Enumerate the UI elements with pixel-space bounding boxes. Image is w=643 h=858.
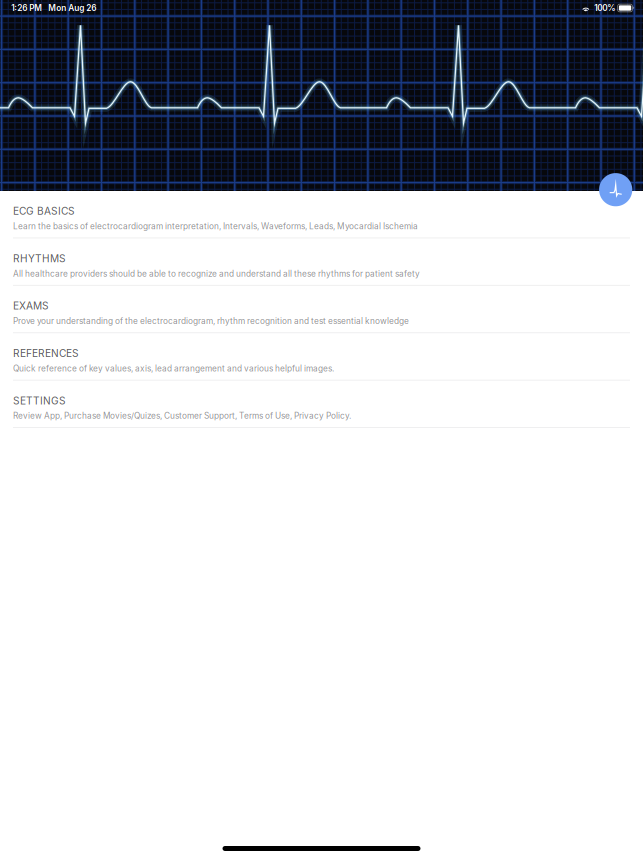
staticText: REFERENCES bbox=[13, 347, 79, 359]
button[interactable]: SETTINGS bbox=[0, 381, 643, 428]
staticText: Mon Aug 26 bbox=[48, 3, 96, 13]
staticText: Prove your understanding of the electroc… bbox=[13, 316, 409, 326]
staticText: 100% bbox=[594, 3, 615, 13]
button[interactable]: RHYTHMS bbox=[0, 238, 643, 286]
staticText: Review App, Purchase Movies/Quizes, Cust… bbox=[13, 411, 351, 421]
staticText: EXAMS bbox=[13, 300, 49, 312]
staticText: RHYTHMS bbox=[13, 252, 66, 265]
staticText: SETTINGS bbox=[13, 395, 66, 407]
staticText: Learn the basics of electrocardiogram in… bbox=[13, 221, 418, 231]
button[interactable]: REFERENCES bbox=[0, 333, 643, 381]
button[interactable]: EXAMS bbox=[0, 286, 643, 333]
staticText: Quick reference of key values, axis, lea… bbox=[13, 363, 334, 373]
button[interactable]: Start ECG bbox=[599, 173, 632, 206]
staticText: 1:26 PM bbox=[11, 3, 42, 13]
button[interactable]: ECG BASICS bbox=[0, 191, 643, 238]
staticText: ECG BASICS bbox=[13, 205, 75, 217]
staticText: All healthcare providers should be able … bbox=[13, 269, 420, 279]
